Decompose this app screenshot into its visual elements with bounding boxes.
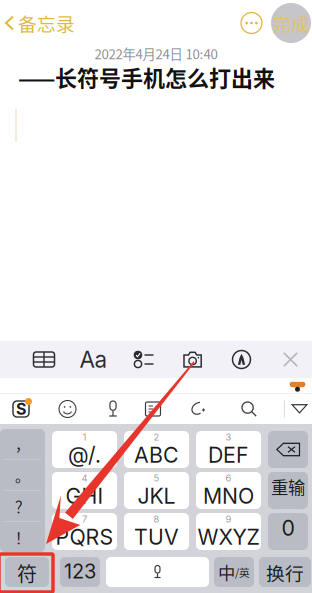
button[interactable]: 1 — [52, 431, 117, 468]
staticText: JKL — [137, 483, 175, 509]
button[interactable]: ！ — [0, 522, 45, 552]
staticText: 4 — [81, 472, 87, 484]
staticText: ！ — [15, 526, 30, 548]
staticText: 重输 — [271, 474, 305, 499]
button[interactable]: 9 — [196, 513, 261, 550]
staticText: 2 — [153, 431, 159, 443]
button[interactable]: 3 — [196, 431, 261, 468]
staticText: ？ — [15, 495, 30, 517]
button[interactable]: Keyboard layout — [132, 393, 174, 425]
button[interactable]: 8 — [124, 513, 189, 550]
button[interactable]: Markup — [217, 339, 266, 379]
staticText: TUV — [134, 524, 179, 550]
staticText: 8 — [153, 513, 159, 525]
button[interactable]: 。 — [0, 460, 45, 490]
staticText: 1 — [82, 431, 86, 443]
button[interactable]: 6 — [196, 472, 261, 509]
button[interactable]: Emoji — [41, 393, 94, 425]
button[interactable]: 2 — [124, 431, 189, 468]
button[interactable]: 符 — [5, 557, 49, 587]
button[interactable]: 换行 — [259, 557, 311, 587]
staticText: 换行 — [266, 559, 304, 586]
button[interactable]: ， — [0, 429, 45, 459]
button[interactable]: More options — [241, 12, 262, 33]
button[interactable]: Camera — [168, 339, 217, 379]
button[interactable]: Delete — [268, 431, 308, 468]
button[interactable]: Hide keyboard — [285, 393, 312, 425]
staticText: /英 — [235, 564, 250, 580]
staticText: 5 — [153, 472, 159, 484]
button[interactable]: Checklist — [119, 339, 168, 379]
staticText: ABC — [134, 442, 179, 468]
staticText: 7 — [82, 513, 87, 525]
staticText: GHI — [65, 483, 103, 509]
staticText: @/. — [68, 442, 101, 468]
button[interactable]: Table — [20, 339, 68, 379]
button[interactable]: Voice input — [94, 393, 132, 425]
staticText: 2022年4月24日 10:40 — [94, 44, 217, 63]
staticText: 备忘录 — [18, 9, 75, 36]
button[interactable]: Text format — [68, 339, 119, 379]
staticText: PQRS — [55, 524, 113, 550]
button[interactable]: 4 — [52, 472, 117, 509]
staticText: S — [16, 399, 26, 419]
staticText: 。 — [15, 464, 30, 486]
staticText: 0 — [281, 515, 294, 541]
staticText: WXYZ — [197, 524, 259, 550]
staticText: 3 — [225, 431, 231, 443]
staticText: Aa — [79, 346, 107, 373]
button[interactable]: Sogou input — [1, 393, 41, 425]
button[interactable]: 123 — [60, 557, 100, 587]
button[interactable]: 备忘录 — [0, 1, 83, 45]
staticText: ， — [15, 433, 30, 455]
button[interactable]: 重输 — [268, 472, 308, 509]
button[interactable]: 5 — [124, 472, 189, 509]
button[interactable]: Space — [106, 557, 209, 587]
button[interactable]: Search — [222, 393, 276, 425]
button[interactable]: 0 — [268, 513, 308, 550]
button[interactable]: Close toolbar — [266, 339, 312, 379]
button[interactable]: Handwriting — [174, 393, 222, 425]
staticText: ——长符号手机怎么打出来 — [18, 61, 275, 93]
staticText: 中 — [218, 559, 235, 585]
staticText: 符 — [17, 558, 37, 587]
staticText: DEF — [208, 442, 249, 468]
button[interactable]: 7 — [52, 513, 117, 550]
staticText: 9 — [225, 513, 231, 525]
button[interactable]: ？ — [0, 491, 45, 521]
staticText: 123 — [64, 559, 96, 583]
button[interactable]: 完成 — [271, 3, 311, 43]
staticText: 6 — [225, 472, 231, 484]
staticText: 完成 — [272, 9, 310, 36]
staticText: MNO — [203, 483, 254, 509]
button[interactable]: Chinese English toggle — [214, 557, 254, 587]
